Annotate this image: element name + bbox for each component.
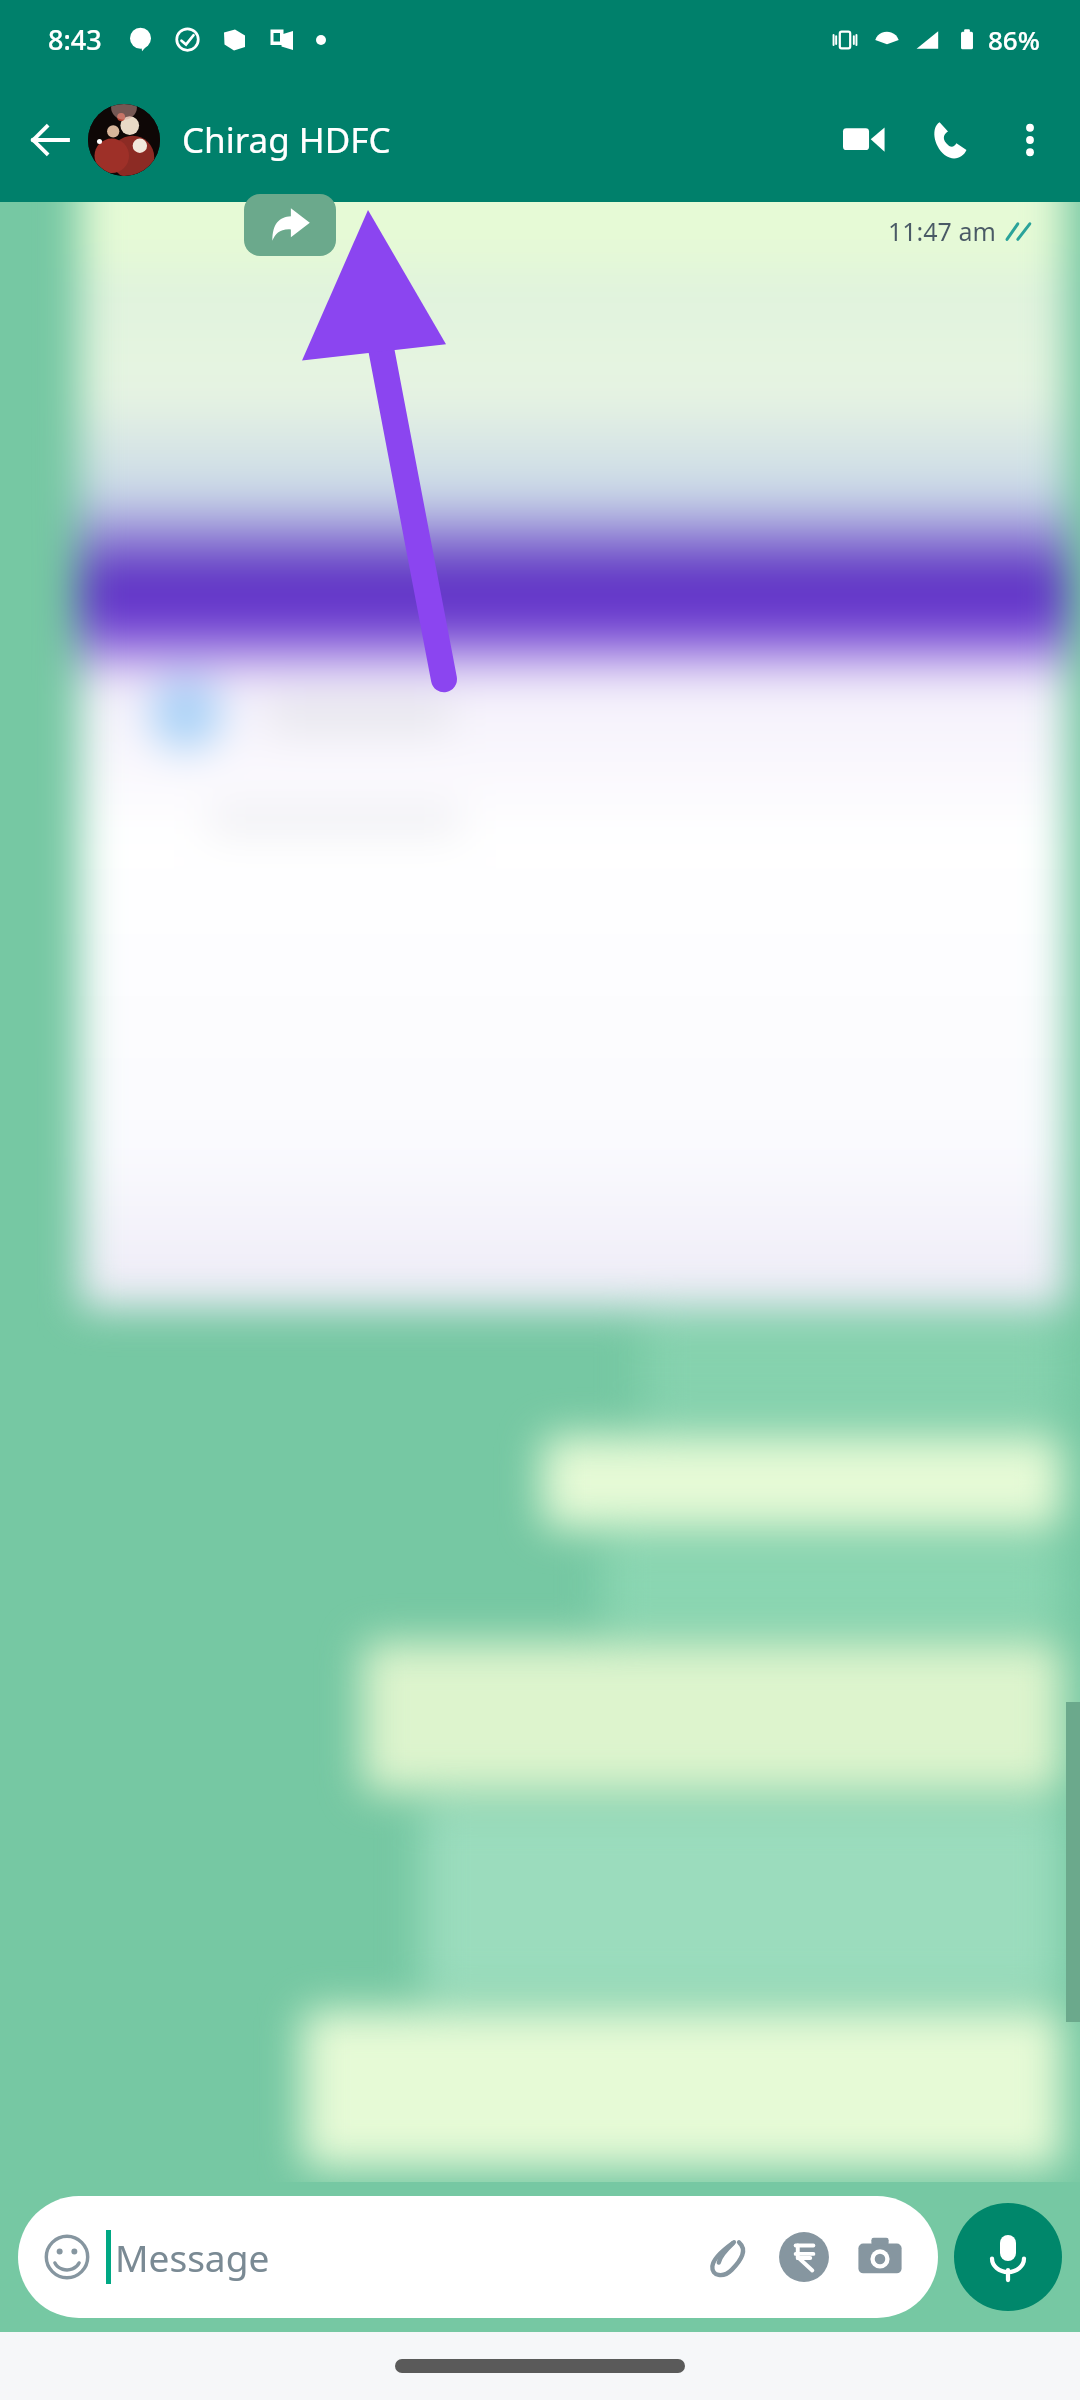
button[interactable]: Message <box>18 2196 938 2318</box>
button[interactable]: More options <box>990 100 1070 180</box>
staticText: 86% <box>988 22 1040 57</box>
button[interactable]: Camera <box>848 2225 912 2289</box>
staticText: 8:43 <box>48 21 102 58</box>
button[interactable]: Voice message <box>954 2203 1062 2311</box>
staticText: 11:47 am <box>888 214 996 248</box>
button[interactable]: Forward <box>244 194 336 256</box>
staticText: Chirag HDFC <box>182 116 391 164</box>
button[interactable]: Video call <box>822 98 906 182</box>
button[interactable]: Chirag HDFC <box>88 78 822 202</box>
button[interactable]: Back <box>12 102 88 178</box>
button[interactable]: Voice call <box>906 98 990 182</box>
button[interactable]: Attach <box>696 2225 760 2289</box>
button[interactable]: Payment <box>772 2225 836 2289</box>
staticText: Message <box>115 2232 696 2282</box>
